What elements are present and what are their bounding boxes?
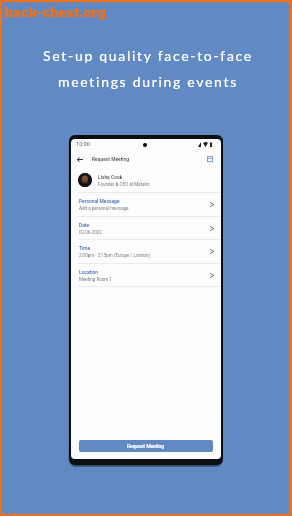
staticText: Time xyxy=(79,245,91,251)
button[interactable]: Time xyxy=(71,240,221,263)
staticText: Personal Message xyxy=(79,198,120,204)
staticText: Meeting Room 1 xyxy=(79,277,112,282)
button[interactable]: Lisha Cook xyxy=(71,168,221,192)
button[interactable]: Calendar xyxy=(204,153,216,165)
staticText: 10:00 xyxy=(76,141,90,148)
staticText: Founder & CEO at Matabo xyxy=(98,182,150,187)
staticText: Lisha Cook xyxy=(98,174,123,180)
staticText: Add a personal message. xyxy=(79,206,130,211)
button[interactable]: Personal Message xyxy=(71,193,221,216)
staticText: Request Meeting xyxy=(92,156,130,162)
staticText: Location xyxy=(79,269,98,275)
button[interactable]: Request Meeting xyxy=(79,440,213,452)
button[interactable]: Date xyxy=(71,217,221,239)
button[interactable]: Location xyxy=(71,264,221,286)
staticText: meetings during events xyxy=(58,73,238,90)
staticText: hack-cheat.org xyxy=(4,5,107,21)
staticText: Request Meeting xyxy=(127,443,165,449)
staticText: Date xyxy=(79,222,90,228)
staticText: 2:00pm - 2:15pm (Europe / London) xyxy=(79,253,151,258)
staticText: Set-up quality face-to-face xyxy=(43,47,253,64)
staticText: 02-06-2022 xyxy=(79,230,102,235)
button[interactable]: Back xyxy=(74,153,86,165)
